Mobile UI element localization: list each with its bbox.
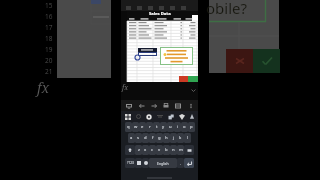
button[interactable]: d [142,133,149,143]
button[interactable]: Search [134,112,143,121]
staticText: c [151,147,154,153]
staticText: d [144,135,147,141]
staticText: r [149,124,151,130]
button[interactable]: Undo [137,101,146,110]
button[interactable]: r [146,122,153,132]
button[interactable]: Shield [177,112,186,121]
button[interactable]: Notifications [187,112,196,121]
staticText: s [137,135,140,141]
button[interactable] [184,145,194,155]
staticText: fx [122,83,129,93]
button[interactable]: n [170,145,177,155]
staticText: v [158,147,161,153]
button[interactable]: Calendar [173,101,182,110]
button[interactable] [125,145,135,155]
staticText: o [183,124,186,130]
staticText: a [130,135,133,141]
staticText: . [180,161,182,166]
staticText: p [190,124,193,130]
staticText: fx [37,78,50,97]
button[interactable]: t [153,122,160,132]
button[interactable]: English [149,158,177,168]
staticText: l [187,135,189,141]
staticText: i [177,124,179,130]
staticText: obile? [206,0,248,18]
staticText: g [158,135,161,141]
button[interactable]: Apps [123,112,132,121]
button[interactable]: . [177,158,184,168]
button[interactable]: m [177,145,184,155]
staticText: k [179,135,182,141]
button[interactable]: Present [124,101,133,110]
staticText: m [179,147,183,153]
button[interactable]: Filter [155,112,164,121]
staticText: ?123 [127,161,134,165]
button[interactable]: j [170,133,177,143]
staticText: 20 [45,56,53,65]
staticText: y [162,124,165,130]
button[interactable]: b [163,145,170,155]
button[interactable]: u [167,122,174,132]
staticText: English [157,161,169,166]
staticText: 17 [45,23,53,32]
button[interactable]: c [149,145,156,155]
button[interactable]: Redo [149,101,158,110]
button[interactable]: Settings [144,112,153,121]
button[interactable] [135,158,142,168]
button[interactable]: ?123 [125,158,135,168]
button[interactable]: x [142,145,149,155]
button[interactable]: z [135,145,142,155]
staticText: h [165,135,168,141]
button[interactable]: Chart [166,112,175,121]
button[interactable] [160,47,193,65]
staticText: w [134,124,138,130]
staticText: 15 [45,1,53,10]
staticText: 16 [45,12,53,21]
button[interactable]: y [160,122,167,132]
button[interactable]: a [128,133,135,143]
button[interactable]: f [149,133,156,143]
button[interactable] [184,158,194,168]
button[interactable]: q [125,122,132,132]
button[interactable]: Print [161,101,170,110]
button[interactable]: o [181,122,188,132]
staticText: n [172,147,175,153]
button[interactable]: k [177,133,184,143]
staticText: z [138,147,140,153]
button[interactable]: v [156,145,163,155]
staticText: x [144,147,147,153]
button[interactable]: Cancel [226,49,253,73]
button[interactable]: p [188,122,195,132]
button[interactable] [142,158,149,168]
staticText: b [165,147,168,153]
button[interactable]: More [186,101,195,110]
button[interactable]: l [184,133,191,143]
button[interactable]: g [156,133,163,143]
staticText: Sales Data [149,11,171,17]
staticText: t [156,124,158,130]
button[interactable]: i [174,122,181,132]
button[interactable]: h [163,133,170,143]
staticText: e [141,124,144,130]
button[interactable]: Confirm [253,49,280,73]
staticText: u [169,124,172,130]
button[interactable]: e [139,122,146,132]
staticText: 18 [45,34,53,43]
button[interactable]: s [135,133,142,143]
staticText: j [173,135,175,141]
staticText: f [152,135,154,141]
staticText: 21 [45,67,53,76]
staticText: 19 [45,45,53,54]
staticText: q [127,124,130,130]
button[interactable]: w [132,122,139,132]
